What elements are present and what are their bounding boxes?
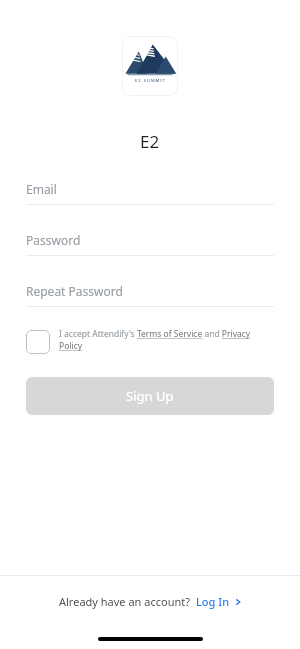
staticText: Password — [26, 232, 81, 248]
staticText: Log In — [196, 594, 230, 609]
staticText: Already have an account? — [59, 594, 190, 609]
other: Accept terms checkbox — [26, 330, 50, 354]
button[interactable]: Password — [26, 232, 274, 256]
staticText: I accept Attendify's Terms of Service an… — [59, 328, 274, 352]
staticText: Sign Up — [126, 387, 174, 405]
staticText: E2 — [140, 130, 160, 153]
button[interactable]: Sign Up — [26, 377, 274, 415]
staticText: E 2 S U M M I T — [135, 78, 166, 83]
button[interactable]: Email — [26, 181, 274, 205]
button[interactable]: Log In — [196, 594, 242, 609]
staticText: Repeat Password — [26, 283, 123, 299]
button[interactable]: Accept terms checkbox — [26, 328, 274, 352]
staticText: Email — [26, 181, 57, 197]
button[interactable]: Repeat Password — [26, 283, 274, 307]
